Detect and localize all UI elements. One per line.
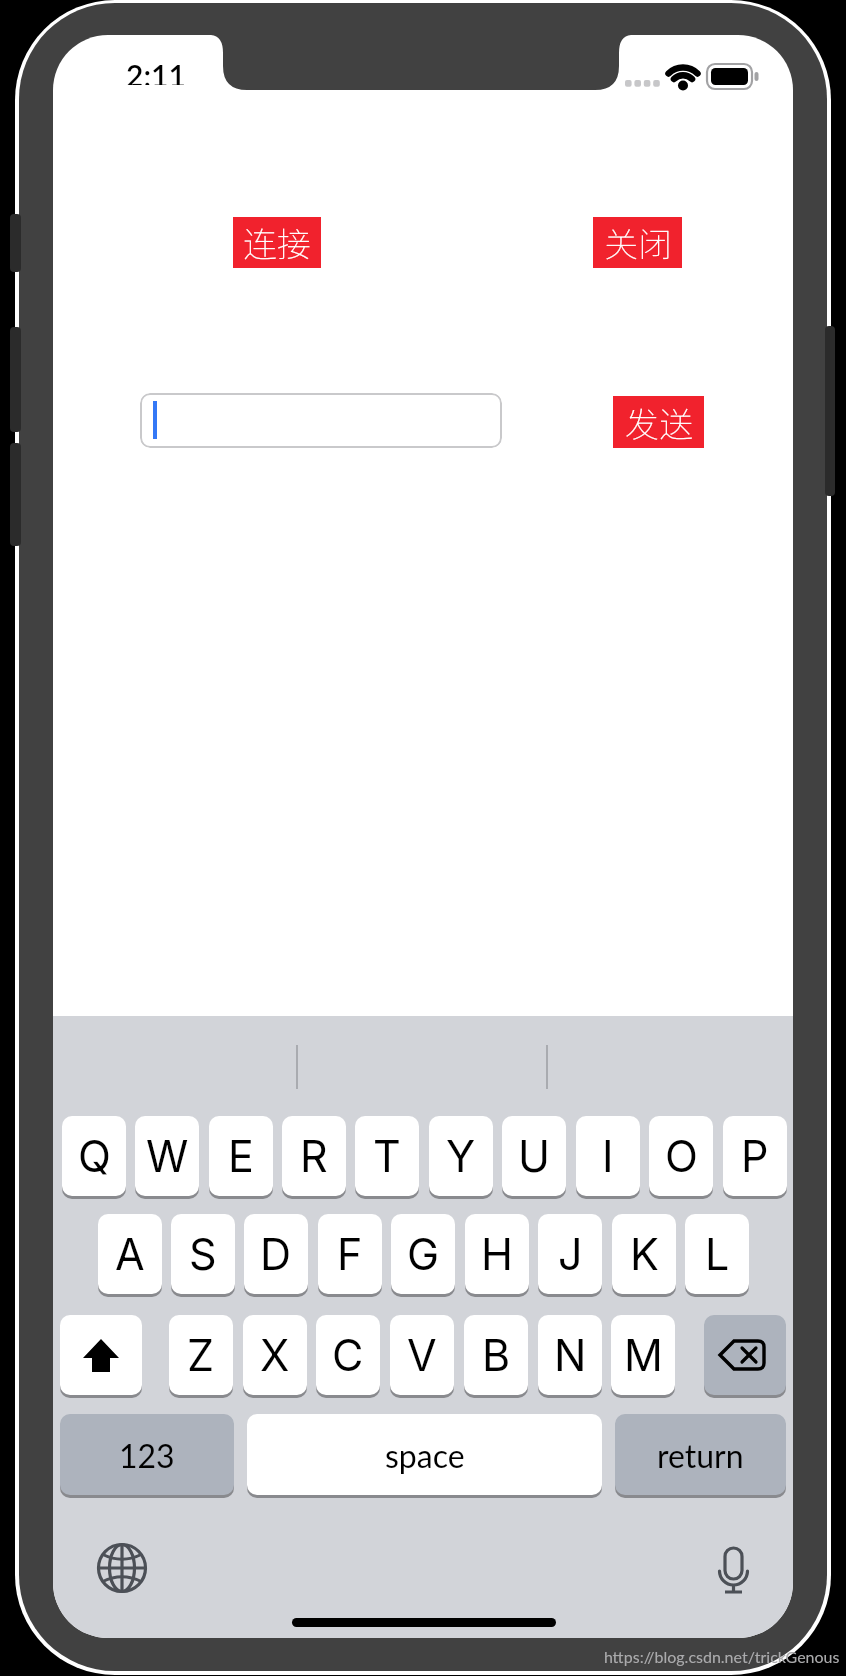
button[interactable] [60,1315,142,1395]
staticText: N [554,1329,587,1381]
button[interactable]: S [171,1214,235,1294]
staticText: V [407,1329,437,1381]
staticText: return [657,1436,744,1474]
button[interactable] [140,393,502,448]
button[interactable] [704,1315,786,1395]
button[interactable]: K [612,1214,676,1294]
button[interactable]: U [502,1116,566,1196]
button[interactable]: D [244,1214,308,1294]
button[interactable]: V [390,1315,454,1395]
button[interactable]: F [318,1214,382,1294]
button[interactable]: 发送 [613,396,704,448]
button[interactable]: T [355,1116,419,1196]
button[interactable]: return [615,1414,786,1495]
staticText: 关闭 [604,218,672,267]
staticText: Q [78,1130,111,1182]
staticText: C [332,1329,364,1381]
staticText: 连接 [243,218,311,267]
staticText: U [518,1130,550,1182]
staticText: 123 [119,1436,175,1474]
staticText: T [373,1130,401,1182]
button[interactable]: H [465,1214,529,1294]
staticText: Y [446,1130,476,1182]
staticText: space [385,1436,465,1474]
button[interactable]: X [243,1315,307,1395]
staticText: 发送 [625,398,693,447]
staticText: https://blog.csdn.net/trickGenous [604,1647,840,1666]
button[interactable]: B [464,1315,528,1395]
staticText: I [602,1130,614,1182]
staticText: K [630,1228,659,1280]
staticText: J [558,1228,583,1280]
staticText: F [337,1228,363,1280]
button[interactable]: N [538,1315,602,1395]
button[interactable]: Z [169,1315,233,1395]
staticText: L [705,1228,730,1280]
button[interactable]: C [316,1315,380,1395]
staticText: M [624,1329,663,1381]
staticText: O [665,1130,698,1182]
staticText: H [481,1228,513,1280]
staticText: P [741,1130,769,1182]
staticText: X [260,1329,290,1381]
button[interactable]: L [685,1214,749,1294]
button[interactable]: M [611,1315,675,1395]
staticText: B [482,1329,511,1381]
staticText: A [115,1228,145,1280]
button[interactable]: 关闭 [593,217,682,268]
button[interactable]: Y [429,1116,493,1196]
button[interactable]: Q [62,1116,126,1196]
button[interactable]: I [576,1116,640,1196]
staticText: S [189,1228,217,1280]
button[interactable]: A [98,1214,162,1294]
button[interactable]: space [247,1414,602,1495]
staticText: E [228,1130,254,1182]
button[interactable]: 连接 [233,217,321,268]
button[interactable]: R [282,1116,346,1196]
staticText: Z [187,1329,215,1381]
staticText: D [260,1228,292,1280]
button[interactable]: 123 [60,1414,234,1495]
staticText: G [407,1228,440,1280]
button[interactable]: J [538,1214,602,1294]
staticText: R [300,1130,328,1182]
button[interactable]: O [649,1116,713,1196]
staticText: W [146,1130,189,1182]
button[interactable]: W [135,1116,199,1196]
button[interactable]: G [391,1214,455,1294]
button[interactable]: P [723,1116,787,1196]
staticText: 2:11 [126,57,186,85]
button[interactable]: E [209,1116,273,1196]
